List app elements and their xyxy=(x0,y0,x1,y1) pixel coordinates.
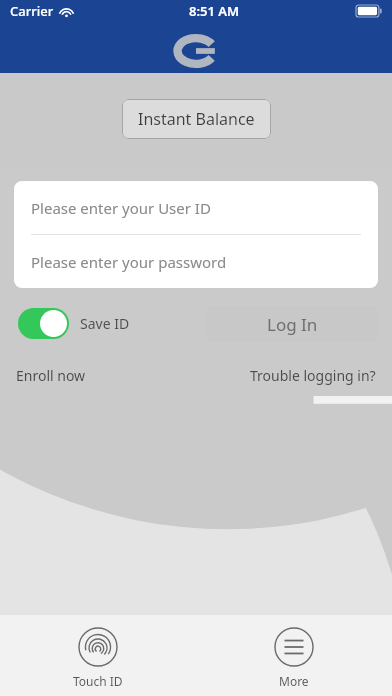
staticText: 8:51 AM xyxy=(189,2,240,20)
staticText: Log In xyxy=(267,313,318,336)
button[interactable]: Log In xyxy=(207,306,377,342)
button[interactable]: Please enter your password xyxy=(14,235,378,288)
button[interactable]: Save ID xyxy=(18,308,130,339)
button[interactable]: More xyxy=(260,623,328,693)
button[interactable]: Trouble logging in? xyxy=(250,366,376,385)
staticText: Save ID xyxy=(80,314,130,333)
staticText: Touch ID xyxy=(73,673,123,689)
button[interactable]: Enroll now xyxy=(16,366,86,385)
button[interactable]: Please enter your User ID xyxy=(14,181,378,234)
staticText: Trouble logging in? xyxy=(250,366,376,385)
button[interactable]: Touch ID xyxy=(59,623,137,693)
staticText: More xyxy=(279,673,309,689)
staticText: Enroll now xyxy=(16,366,86,385)
staticText: Please enter your User ID xyxy=(31,198,211,218)
staticText: Carrier xyxy=(10,2,54,20)
staticText: Instant Balance xyxy=(138,108,255,130)
button[interactable]: Instant Balance xyxy=(122,99,271,139)
staticText: Please enter your password xyxy=(31,252,227,272)
